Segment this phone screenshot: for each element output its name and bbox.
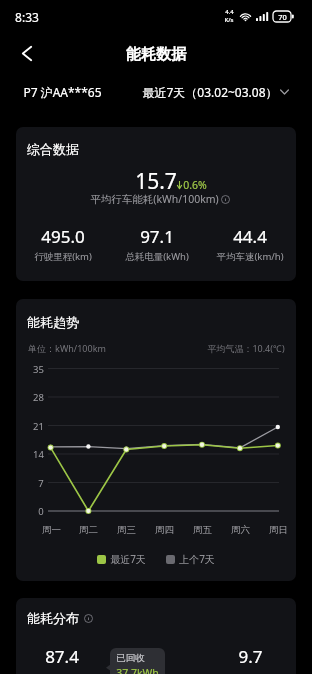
staticText: 周一 xyxy=(42,524,61,536)
staticText: 能耗分布 xyxy=(27,610,79,626)
staticText: 周日 xyxy=(269,524,288,536)
staticText: 0 xyxy=(38,505,44,517)
staticText: 能耗趋势 xyxy=(27,314,79,330)
button[interactable]: P7 沪AA***65 xyxy=(23,84,102,100)
staticText: 周六 xyxy=(231,524,250,536)
staticText: 37.7kWh xyxy=(116,666,159,674)
staticText: 8:33 xyxy=(15,9,39,25)
staticText: 行驶里程(km) xyxy=(34,250,92,263)
staticText: 周三 xyxy=(117,524,136,536)
staticText: 0.6% xyxy=(183,178,207,192)
staticText: 平均气温：10.4(℃) xyxy=(207,342,285,354)
staticText: 14 xyxy=(33,448,44,460)
staticText: 44.4 xyxy=(233,225,267,248)
staticText: 15.7 xyxy=(135,167,177,196)
staticText: 综合数据 xyxy=(27,141,79,157)
staticText: 周四 xyxy=(155,524,174,536)
staticText: 21 xyxy=(33,420,44,432)
staticText: 上个7天 xyxy=(179,552,215,566)
staticText: 已回收 xyxy=(116,652,145,664)
staticText: 平均行车能耗(kWh/100km) xyxy=(90,192,219,206)
staticText: 97.1 xyxy=(140,225,174,248)
staticText: 7 xyxy=(38,477,44,489)
button[interactable]: Back xyxy=(12,38,42,68)
staticText: 28 xyxy=(33,391,44,403)
staticText: K/s xyxy=(224,16,234,24)
button[interactable]: 最近7天（03.02~03.08） xyxy=(142,84,289,100)
staticText: 能耗数据 xyxy=(126,45,186,64)
staticText: 周五 xyxy=(193,524,212,536)
staticText: 单位：kWh/100km xyxy=(28,342,106,354)
staticText: 总耗电量(kWh) xyxy=(125,250,189,263)
staticText: 最近7天（03.02~03.08） xyxy=(142,84,278,100)
staticText: 495.0 xyxy=(41,225,85,248)
staticText: 4.4 xyxy=(225,8,234,16)
staticText: 9.7 xyxy=(238,645,263,668)
staticText: 最近7天 xyxy=(110,552,146,566)
staticText: 周二 xyxy=(79,524,98,536)
staticText: 87.4 xyxy=(45,645,79,668)
staticText: 35 xyxy=(33,363,44,375)
staticText: 平均车速(km/h) xyxy=(216,250,284,263)
staticText: 70 xyxy=(278,12,287,22)
